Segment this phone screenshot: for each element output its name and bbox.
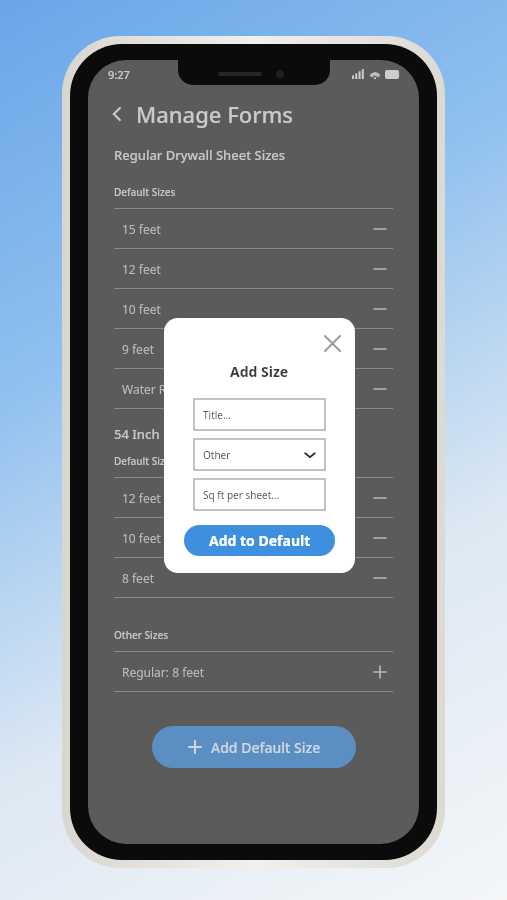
staticText: Add Size — [230, 362, 289, 381]
staticText: Default Sizes — [114, 454, 176, 468]
button[interactable]: Close — [321, 332, 343, 354]
staticText: 9 feet — [122, 341, 154, 357]
staticText: Regular: 8 feet — [122, 664, 205, 680]
button[interactable]: 10 feet — [114, 518, 393, 558]
staticText: Manage Forms — [136, 99, 294, 129]
staticText: 10 feet — [122, 530, 161, 546]
staticText: 10 feet — [122, 301, 161, 317]
button[interactable]: 12 feet — [114, 478, 393, 518]
staticText: 12 feet — [122, 490, 161, 506]
button[interactable]: Regular: 8 feet — [114, 652, 393, 692]
staticText: Default Sizes — [114, 185, 176, 199]
staticText: 9:27 — [108, 67, 130, 82]
staticText: 15 feet — [122, 221, 161, 237]
button[interactable]: Water Resistant: 12 feet — [114, 369, 393, 409]
staticText: 12 feet — [122, 261, 161, 277]
staticText: Sq ft per sheet… — [203, 488, 280, 502]
button[interactable]: 8 feet — [114, 558, 393, 598]
button[interactable]: Sq ft per sheet… — [194, 479, 325, 510]
button[interactable]: 12 feet — [114, 249, 393, 289]
button[interactable]: Other — [194, 439, 325, 470]
staticText: 8 feet — [122, 570, 154, 586]
button[interactable]: Back — [104, 101, 130, 127]
staticText: Add Default Size — [211, 738, 321, 757]
button[interactable]: 9 feet — [114, 329, 393, 369]
button[interactable]: Add Default Size — [152, 726, 356, 768]
button[interactable]: Add to Default — [184, 525, 335, 556]
staticText: Title… — [203, 408, 231, 422]
staticText: Add to Default — [209, 531, 311, 550]
button[interactable]: 15 feet — [114, 209, 393, 249]
staticText: Regular Drywall Sheet Sizes — [114, 146, 286, 164]
button[interactable]: Title… — [194, 399, 325, 430]
staticText: 54 Inch Drywall Sheet Sizes — [114, 425, 283, 443]
staticText: Other — [203, 448, 231, 462]
button[interactable]: 10 feet — [114, 289, 393, 329]
staticText: Water Resistant: 12 feet — [122, 381, 256, 397]
staticText: Other Sizes — [114, 628, 169, 642]
